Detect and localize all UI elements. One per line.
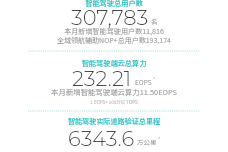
staticText: 万公里: [137, 137, 157, 146]
staticText: 本月新增智能驾驶端云算力11.50EOPS: [0, 86, 228, 97]
staticText: 智能驾驶实际道路验证总里程: [0, 116, 228, 126]
staticText: *: [153, 75, 156, 82]
staticText: 全域领航辅助NOP+总用户数193,174: [0, 35, 228, 45]
staticText: 智能驾驶总用户数: [0, 0, 228, 8]
staticText: 名: [151, 16, 158, 25]
staticText: 307,783: [71, 5, 149, 31]
staticText: 6343.6: [68, 126, 135, 152]
staticText: EOPS: [135, 77, 152, 86]
staticText: 智能驾驶端云总算力: [0, 58, 228, 68]
staticText: 1 EOPS= 100万亿 TOPS: [0, 99, 228, 106]
staticText: 232.21: [72, 66, 132, 92]
staticText: 本月新增智能驾驶用户数11,816: [0, 26, 228, 36]
staticText: *: [158, 135, 161, 142]
